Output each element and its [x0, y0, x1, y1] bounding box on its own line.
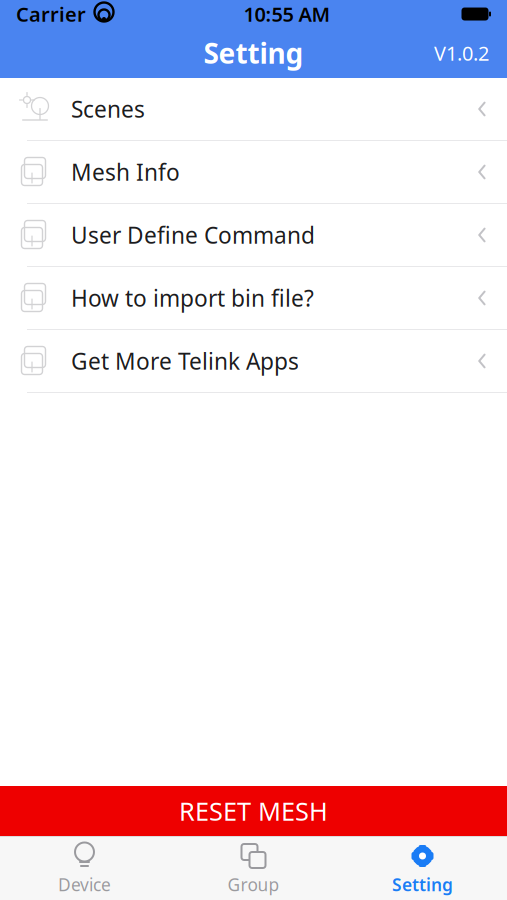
staticText: How to import bin file?	[71, 283, 314, 313]
button[interactable]: Device	[0, 838, 169, 898]
staticText: Setting	[392, 873, 453, 896]
staticText: RESET MESH	[179, 794, 328, 828]
staticText: User Define Command	[71, 220, 315, 250]
staticText: Setting	[203, 34, 303, 72]
button[interactable]: Get More Telink Apps	[0, 330, 507, 393]
button[interactable]: Scenes	[0, 78, 507, 141]
staticText: Mesh Info	[71, 157, 180, 187]
staticText: Device	[58, 873, 111, 896]
button[interactable]: RESET MESH	[0, 786, 507, 836]
staticText: Scenes	[71, 94, 145, 124]
staticText: Get More Telink Apps	[71, 346, 299, 376]
button[interactable]: Group	[169, 838, 338, 898]
button[interactable]: How to import bin file?	[0, 267, 507, 330]
staticText: Group	[227, 873, 279, 896]
staticText: 10:55 AM	[243, 1, 330, 27]
button[interactable]: V1.0.2	[426, 34, 497, 72]
staticText: V1.0.2	[434, 40, 489, 66]
staticText: Carrier	[16, 1, 86, 27]
button[interactable]: User Define Command	[0, 204, 507, 267]
button[interactable]: Mesh Info	[0, 141, 507, 204]
button[interactable]: Setting	[338, 838, 507, 898]
